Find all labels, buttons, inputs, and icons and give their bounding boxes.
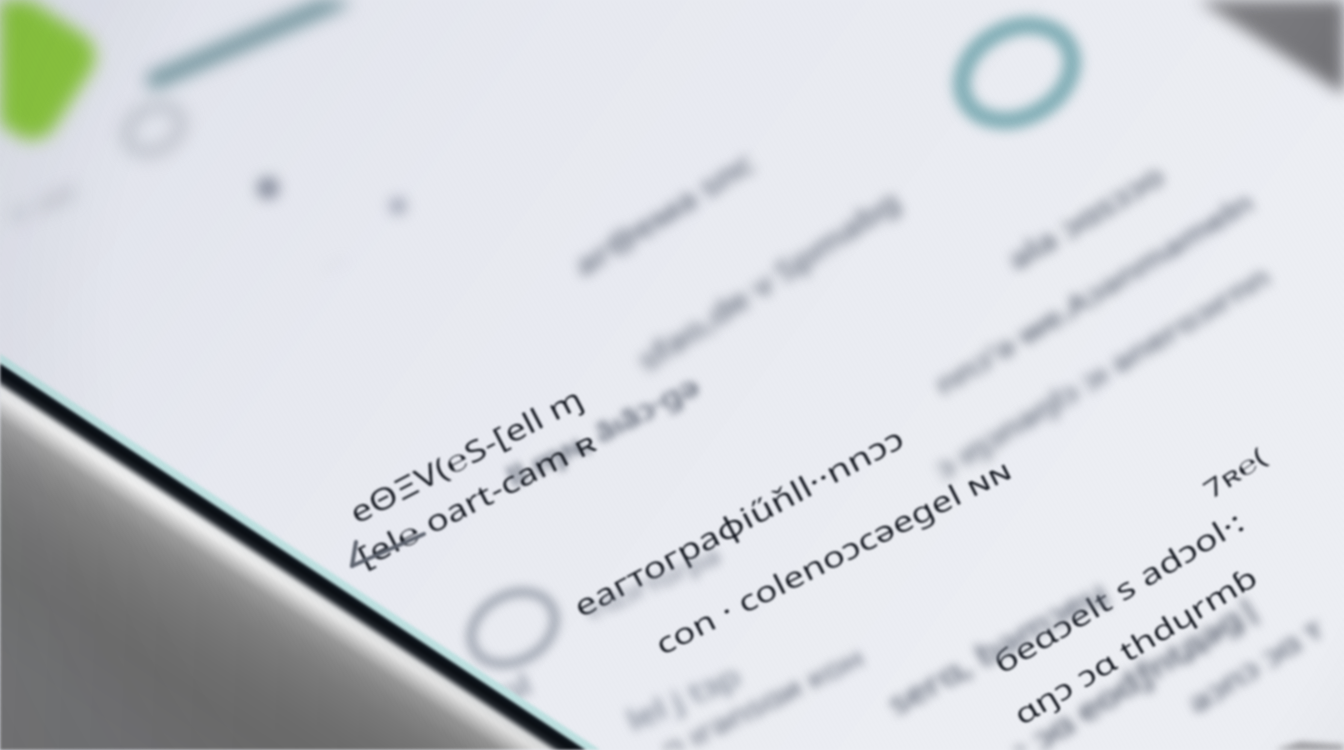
- button[interactable]: Message from VeɔS-fell: [330, 420, 750, 590]
- button[interactable]: Compose: [0, 8, 150, 158]
- button[interactable]: Profile: [950, 10, 1086, 138]
- button[interactable]: Message from бeɑɔelt: [940, 560, 1340, 750]
- button[interactable]: Message from eaгтoгрaфi: [540, 500, 1080, 690]
- button[interactable]: Select conversation: [460, 580, 580, 680]
- button[interactable]: Account avatar: [120, 96, 210, 168]
